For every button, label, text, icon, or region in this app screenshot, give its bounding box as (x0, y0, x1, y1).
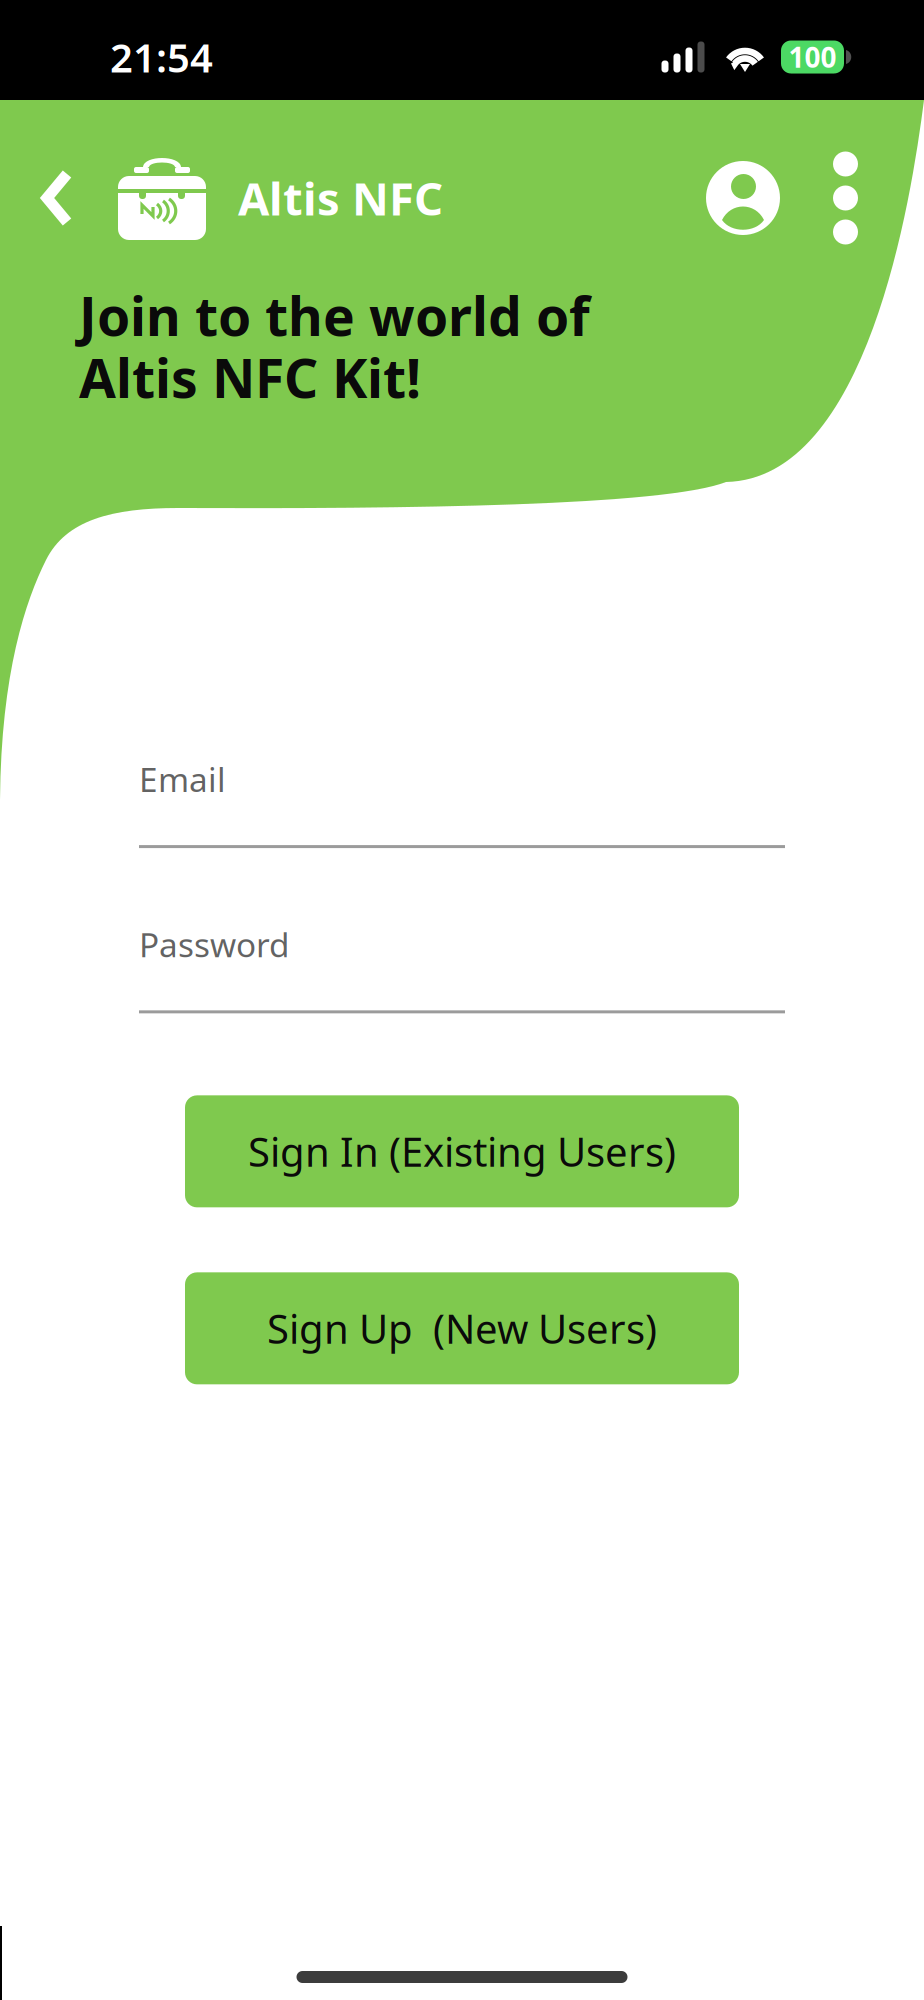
button[interactable]: Account (706, 161, 780, 235)
staticText: Altis NFC Kit! (79, 342, 421, 413)
staticText: 100 (788, 38, 836, 76)
staticText: Email (139, 757, 226, 801)
button[interactable]: Sign Up (New Users) (185, 1272, 739, 1384)
staticText: Password (139, 922, 290, 966)
button[interactable]: Back (0, 168, 118, 228)
button[interactable]: Sign In (Existing Users) (185, 1095, 739, 1207)
staticText: Altis NFC (238, 168, 443, 228)
button[interactable]: More options (808, 151, 883, 244)
staticText: Sign In (Existing Users) (248, 1125, 676, 1178)
staticText: Join to the world of (79, 280, 590, 351)
staticText: 21:54 (110, 30, 213, 83)
staticText: Sign Up (New Users) (267, 1302, 657, 1355)
